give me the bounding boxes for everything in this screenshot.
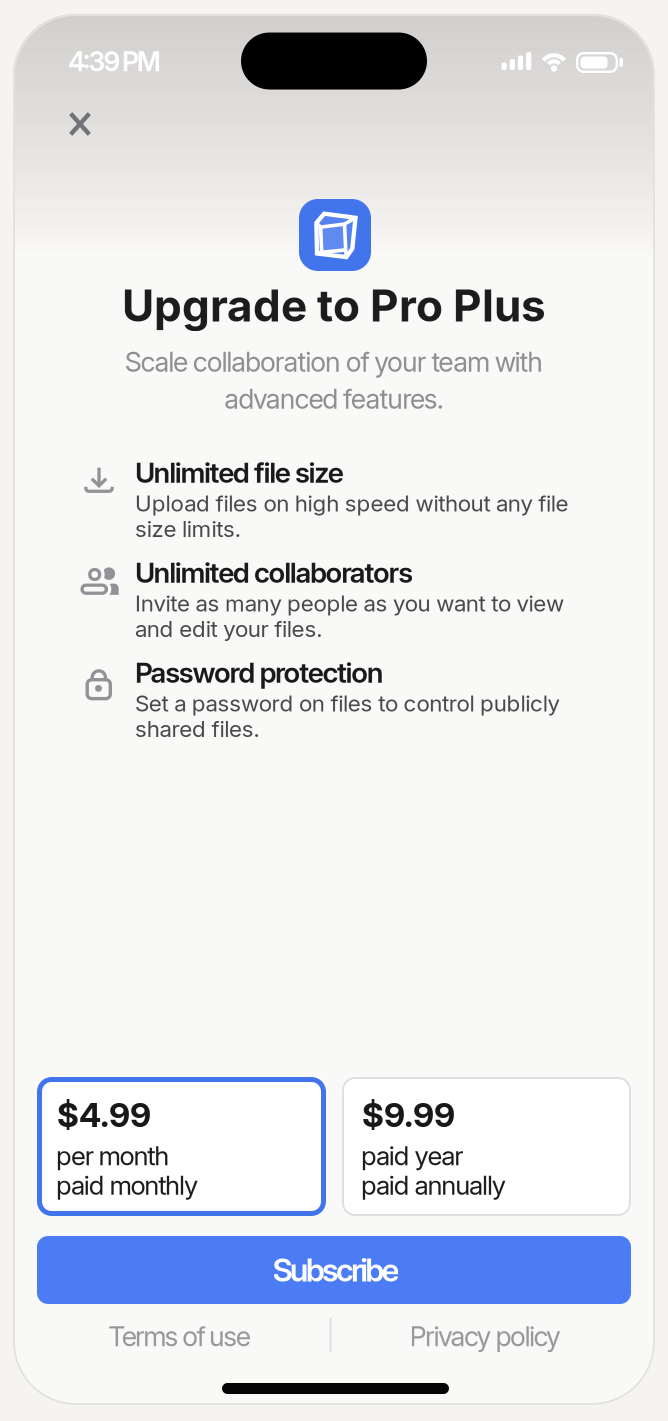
staticText: paid annually [361,1170,506,1201]
staticText: $9.99 [362,1095,455,1134]
staticText: advanced features. [224,383,444,415]
staticText: $4.99 [57,1095,151,1134]
staticText: Subscribe [273,1251,399,1289]
staticText: and edit your files. [135,616,322,642]
staticText: 4:39 PM [68,46,161,77]
staticText: Terms of use [108,1321,251,1352]
staticText: paid year [361,1140,463,1171]
staticText: shared files. [135,716,260,742]
button[interactable]: $4.99 [37,1077,326,1216]
staticText: per month [56,1140,169,1171]
button[interactable] [58,102,102,146]
staticText: Scale collaboration of your team with [125,346,543,378]
staticText: size limits. [135,516,241,542]
staticText: Privacy policy [410,1321,561,1352]
button[interactable]: $9.99 [342,1077,631,1216]
staticText: Invite as many people as you want to vie… [135,590,564,616]
button[interactable]: Privacy policy [335,1316,635,1356]
staticText: Unlimited file size [135,456,344,489]
staticText: paid monthly [56,1170,198,1201]
staticText: Upgrade to Pro Plus [122,279,546,331]
button[interactable]: Terms of use [29,1316,329,1356]
staticText: Set a password on files to control publi… [135,690,560,716]
staticText: Password protection [135,656,384,689]
button[interactable]: Subscribe [37,1236,631,1304]
staticText: Upload files on high speed without any f… [135,490,569,516]
staticText: Unlimited collaborators [135,556,413,589]
